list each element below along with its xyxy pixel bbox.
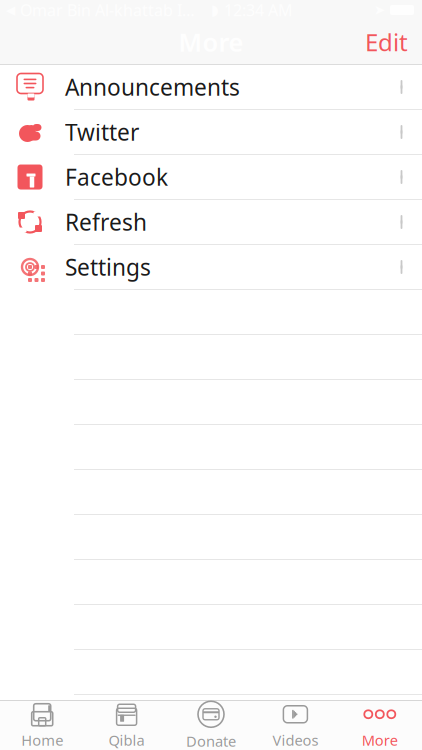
- button[interactable]: Refresh: [0, 200, 422, 245]
- staticText: Home: [21, 730, 63, 750]
- staticText: Twitter: [65, 117, 139, 147]
- button[interactable]: Announcements: [0, 65, 422, 110]
- staticText: Announcements: [65, 72, 240, 102]
- button[interactable]: Videos: [253, 695, 338, 750]
- button[interactable]: Facebook: [0, 155, 422, 200]
- button[interactable]: Donate: [169, 694, 253, 750]
- staticText: More: [362, 730, 398, 750]
- button[interactable]: More: [338, 695, 422, 750]
- button[interactable]: Edit: [351, 18, 422, 66]
- staticText: Settings: [65, 252, 151, 282]
- staticText: Donate: [186, 731, 236, 750]
- button[interactable]: Home: [0, 695, 84, 750]
- button[interactable]: Twitter: [0, 110, 422, 155]
- staticText: Videos: [272, 730, 318, 750]
- staticText: Refresh: [65, 207, 147, 237]
- staticText: Edit: [365, 26, 408, 58]
- button[interactable]: Qibla: [84, 695, 169, 750]
- button[interactable]: Settings: [0, 245, 422, 290]
- staticText: Qibla: [109, 730, 145, 750]
- staticText: Facebook: [65, 162, 168, 192]
